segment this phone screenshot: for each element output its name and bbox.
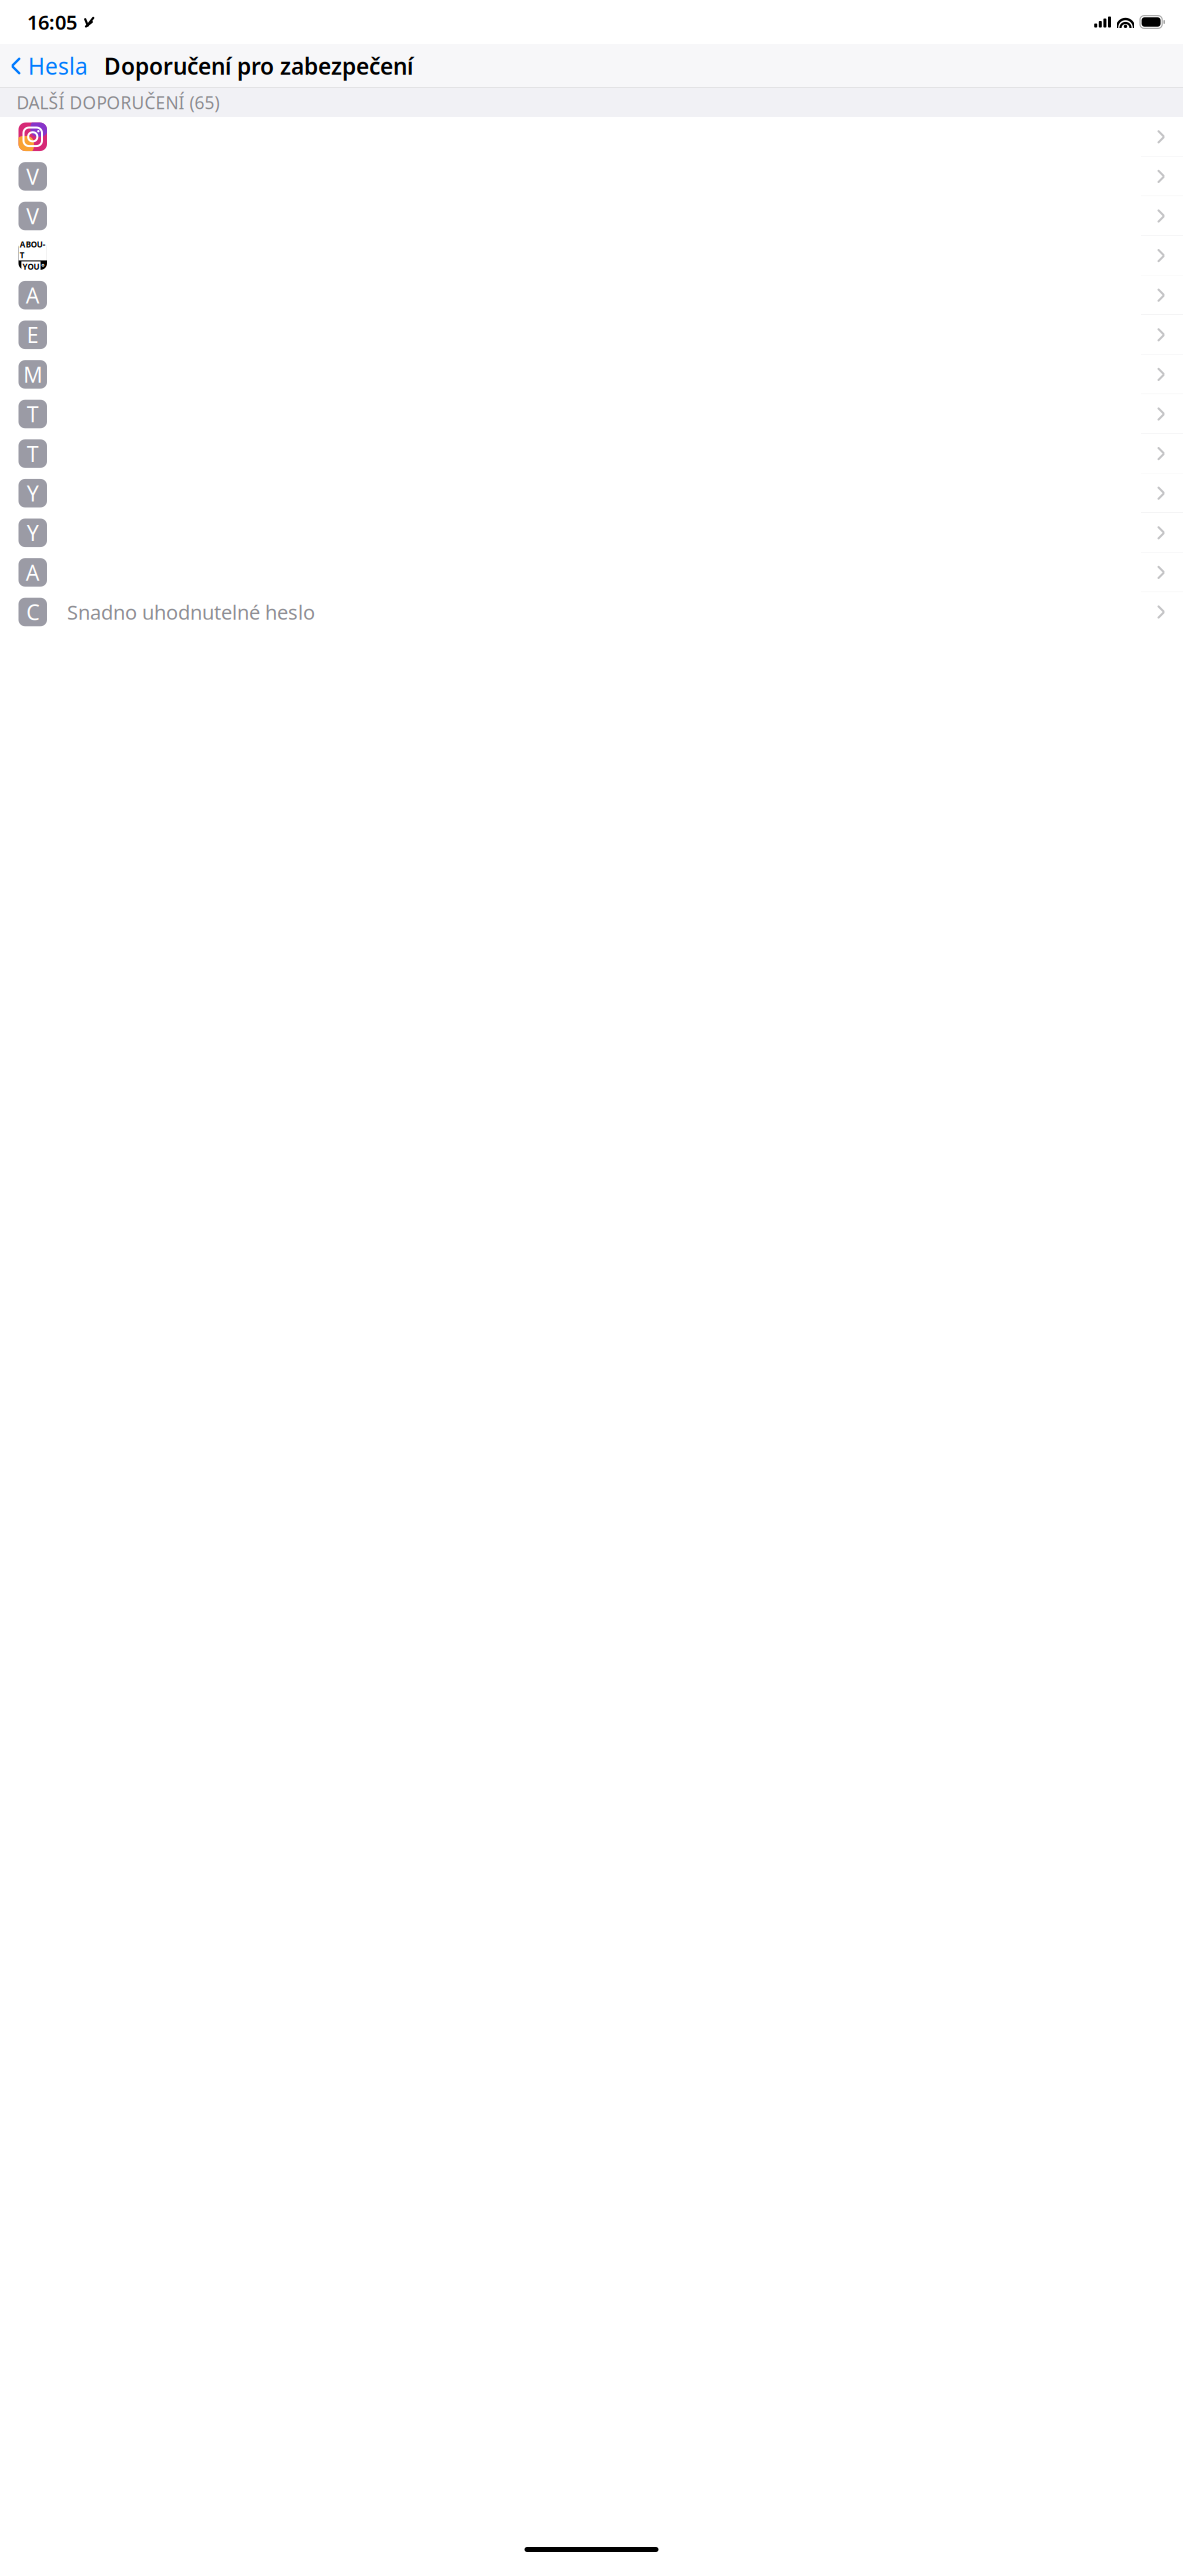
staticText: V — [26, 202, 39, 230]
staticText: Snadno uhodnutelné heslo — [67, 599, 315, 625]
button[interactable]: T — [0, 434, 1183, 473]
button[interactable]: Hesla — [2, 44, 96, 88]
staticText: A — [26, 281, 40, 309]
staticText: ABOUT — [20, 239, 46, 260]
button[interactable]: M — [0, 355, 1183, 394]
button[interactable]: V — [0, 196, 1183, 236]
button[interactable]: E — [0, 315, 1183, 355]
staticText: V — [26, 162, 39, 190]
staticText: A — [26, 558, 40, 586]
button[interactable] — [0, 117, 1183, 157]
staticText: C — [26, 598, 39, 626]
button[interactable]: Y — [0, 473, 1183, 513]
staticText: Y — [27, 519, 39, 547]
staticText: YOU — [23, 261, 40, 272]
staticText: Doporučení pro zabezpečení — [104, 51, 413, 81]
button[interactable]: ABOUT — [0, 236, 1183, 275]
button[interactable]: V — [0, 157, 1183, 196]
staticText: Y — [27, 479, 39, 507]
staticText: T — [27, 439, 39, 468]
staticText: 16:05 — [27, 9, 77, 35]
staticText: ° — [41, 261, 44, 272]
button[interactable]: Y — [0, 513, 1183, 553]
staticText: Hesla — [28, 51, 88, 81]
staticText: M — [23, 360, 42, 388]
button[interactable]: C — [0, 592, 1183, 632]
staticText: E — [27, 321, 39, 349]
staticText: DALŠÍ DOPORUČENÍ (65) — [16, 91, 219, 114]
button[interactable]: A — [0, 553, 1183, 592]
button[interactable]: A — [0, 275, 1183, 315]
staticText: T — [27, 400, 39, 428]
button[interactable]: T — [0, 394, 1183, 434]
